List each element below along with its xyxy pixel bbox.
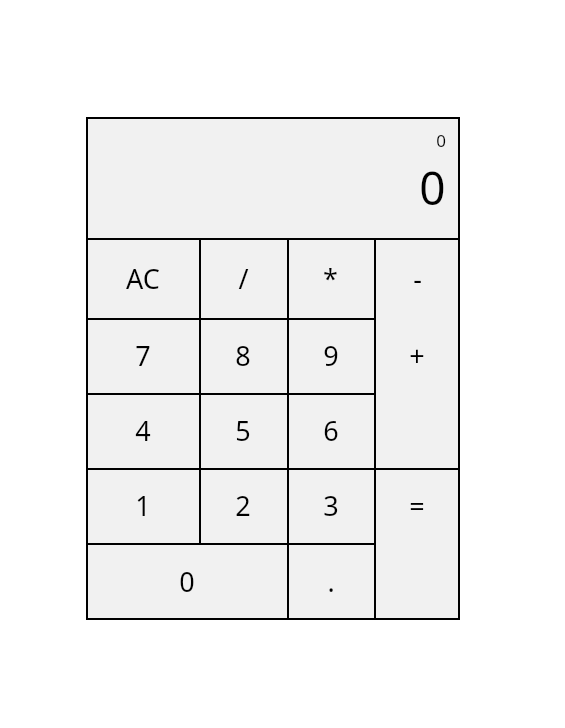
button[interactable]: 1 xyxy=(86,468,199,543)
button[interactable]: / xyxy=(199,238,287,318)
staticText: 9 xyxy=(323,337,339,374)
staticText: . xyxy=(327,563,335,600)
button[interactable]: 4 xyxy=(86,393,199,468)
staticText: 6 xyxy=(323,412,339,449)
staticText: 0 xyxy=(436,129,446,152)
staticText: 4 xyxy=(135,412,151,449)
button[interactable]: * xyxy=(287,238,374,318)
staticText: 5 xyxy=(235,412,251,449)
staticText: 3 xyxy=(323,487,339,524)
staticText: 2 xyxy=(235,487,251,524)
staticText: AC xyxy=(126,260,160,297)
staticText: 1 xyxy=(135,487,151,524)
staticText: 7 xyxy=(135,337,151,374)
staticText: / xyxy=(238,260,249,297)
button[interactable]: . xyxy=(287,543,374,620)
staticText: = xyxy=(409,487,425,524)
button[interactable]: + xyxy=(374,318,460,468)
staticText: - xyxy=(413,260,422,297)
button[interactable]: 2 xyxy=(199,468,287,543)
button[interactable]: AC xyxy=(86,238,199,318)
button[interactable]: 0 xyxy=(86,543,287,620)
button[interactable]: 6 xyxy=(287,393,374,468)
button[interactable]: 8 xyxy=(199,318,287,393)
button[interactable]: 7 xyxy=(86,318,199,393)
staticText: 8 xyxy=(235,337,251,374)
button[interactable]: 9 xyxy=(287,318,374,393)
staticText: * xyxy=(323,260,338,297)
staticText: 0 xyxy=(419,156,446,219)
staticText: + xyxy=(409,337,425,374)
staticText: 0 xyxy=(179,563,195,600)
button[interactable]: 3 xyxy=(287,468,374,543)
button[interactable]: - xyxy=(374,238,460,318)
button[interactable]: = xyxy=(374,468,460,620)
button[interactable]: 5 xyxy=(199,393,287,468)
